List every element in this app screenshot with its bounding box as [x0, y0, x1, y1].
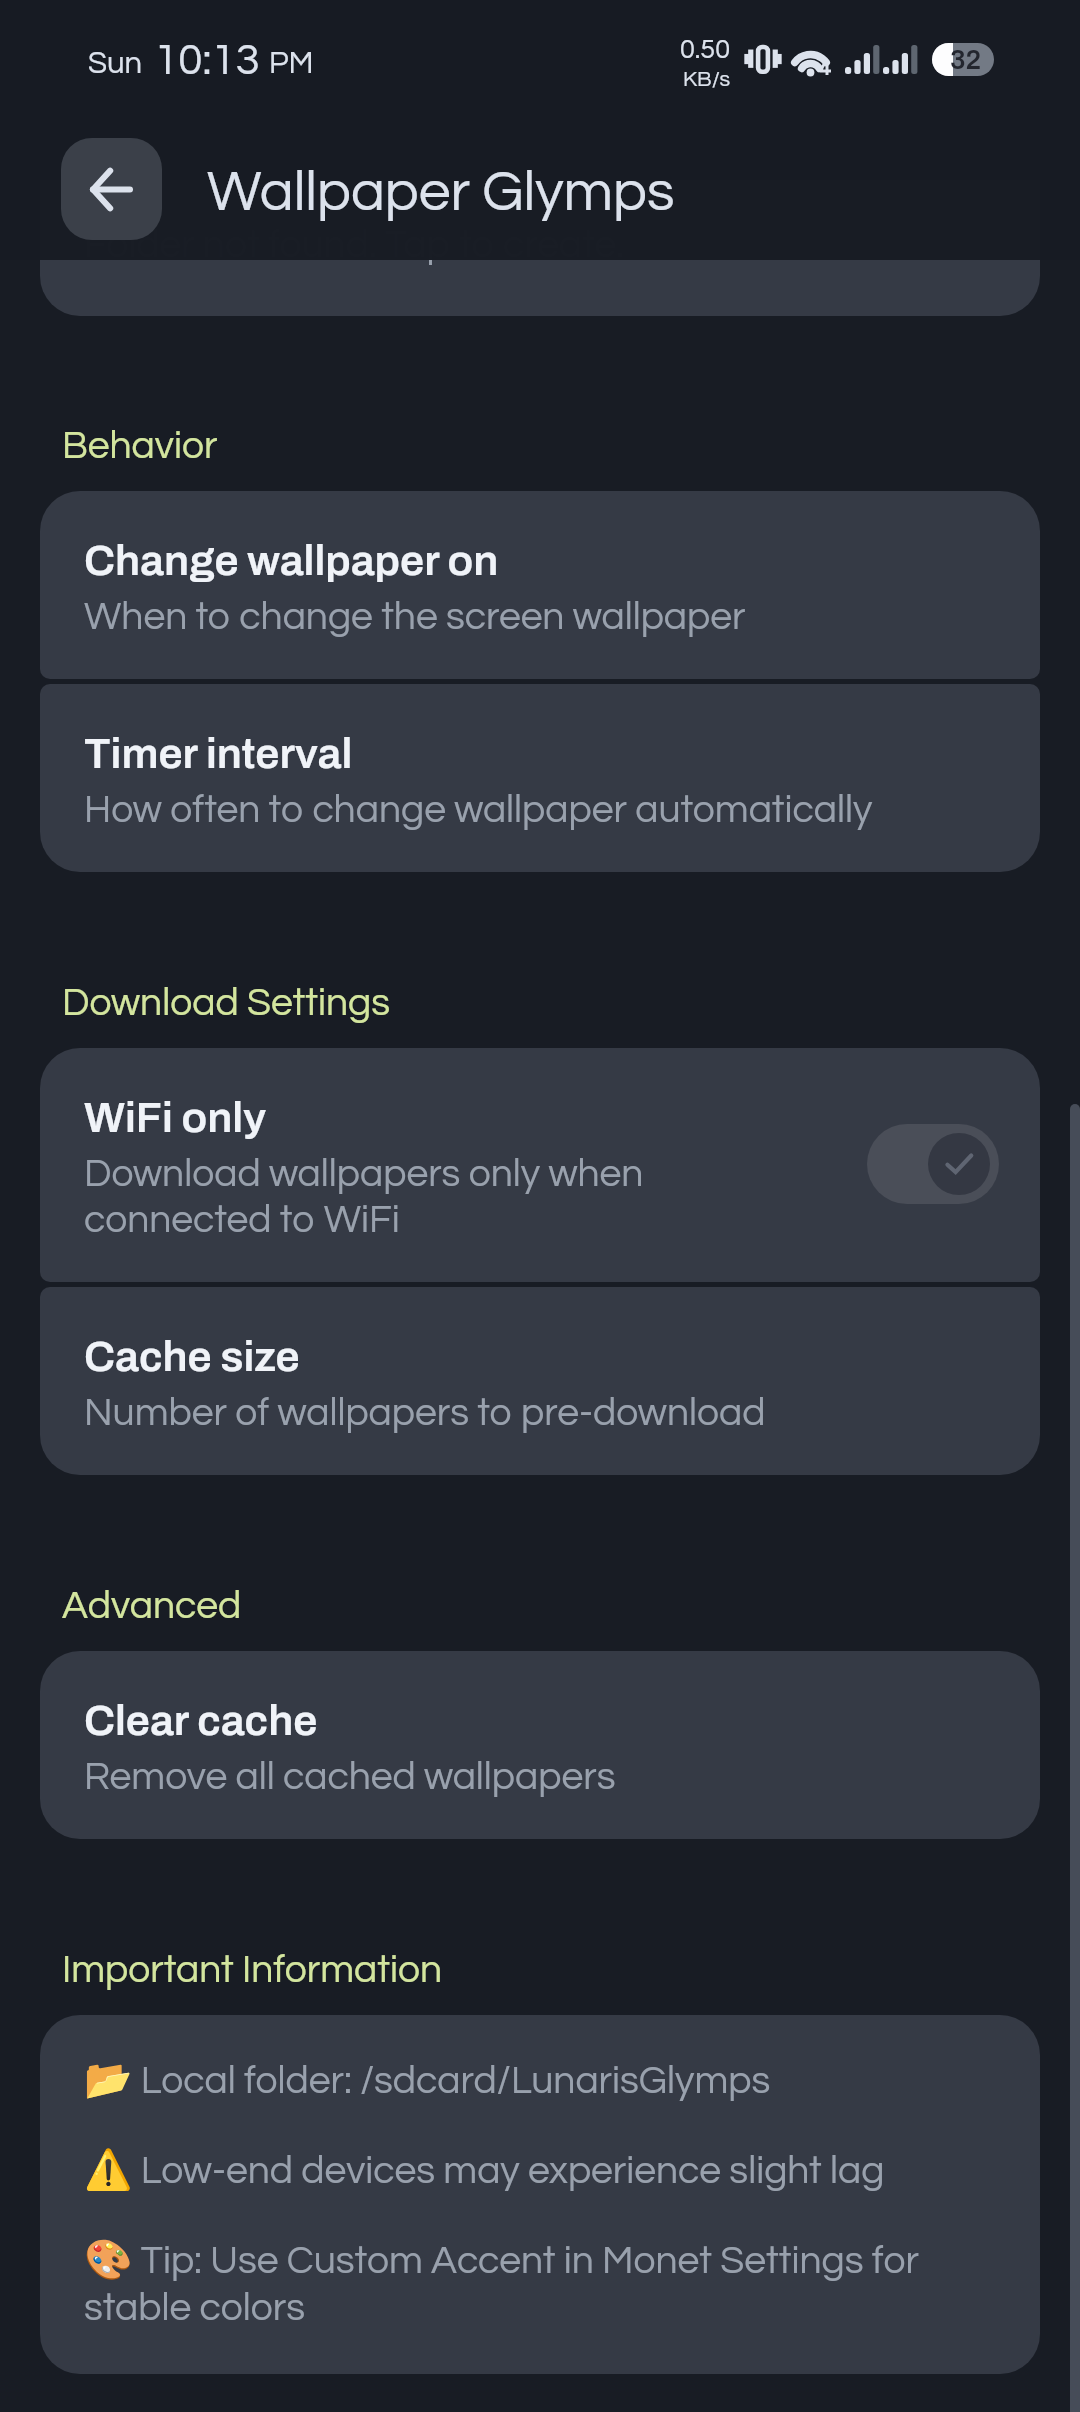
button[interactable]: WiFi only [40, 1048, 1040, 1282]
staticText: 📂 Local folder: /sdcard/LunarisGlymps [84, 2057, 771, 2103]
staticText: Download wallpapers only when connected … [84, 1154, 784, 1240]
button[interactable]: WiFi only toggle [867, 1124, 999, 1204]
staticText: Number of wallpapers to pre-download [84, 1393, 766, 1433]
staticText: KB/s [683, 68, 731, 91]
staticText: WiFi only [84, 1094, 266, 1141]
staticText: Behavior [62, 426, 218, 466]
staticText: Folder not found. Tap to create. [84, 225, 625, 265]
staticText: PM [269, 48, 314, 80]
staticText: Wallpaper Glymps [207, 163, 675, 222]
button[interactable]: Folder not found. Tap to create. [40, 180, 1040, 316]
button[interactable]: Clear cache [40, 1651, 1040, 1839]
button[interactable]: Timer interval [40, 684, 1040, 872]
staticText: 0.50 [680, 36, 731, 64]
staticText: How often to change wallpaper automatica… [84, 790, 873, 830]
staticText: Advanced [62, 1586, 242, 1626]
staticText: Cache size [84, 1333, 300, 1380]
staticText: Download Settings [62, 983, 391, 1023]
staticText: Important Information [62, 1950, 443, 1990]
staticText: 10:13 [154, 38, 260, 83]
button[interactable]: Back [61, 138, 162, 240]
staticText: Clear cache [84, 1697, 318, 1744]
button[interactable]: Cache size [40, 1287, 1040, 1475]
staticText: 🎨 Tip: Use Custom Accent in Monet Settin… [84, 2237, 996, 2328]
staticText: ⚠️ Low-end devices may experience slight… [84, 2147, 885, 2193]
staticText: Remove all cached wallpapers [84, 1757, 616, 1797]
staticText: Sun [88, 48, 143, 80]
button[interactable]: Change wallpaper on [40, 491, 1040, 679]
staticText: Timer interval [84, 730, 353, 777]
staticText: 32 [950, 45, 982, 74]
staticText: When to change the screen wallpaper [84, 597, 746, 637]
staticText: Change wallpaper on [84, 537, 499, 584]
